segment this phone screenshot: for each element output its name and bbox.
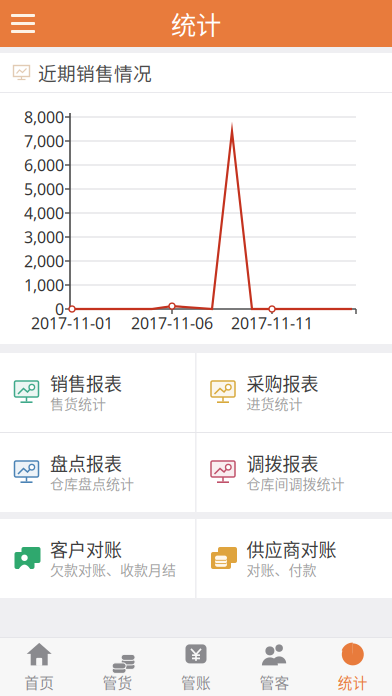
- staticText: 5,000: [24, 178, 64, 200]
- staticText: 仓库盘点统计: [50, 474, 134, 493]
- staticText: 管账: [181, 671, 211, 693]
- staticText: 8,000: [24, 106, 64, 128]
- staticText: 2017-11-01: [31, 312, 113, 334]
- button[interactable]: 管账: [157, 638, 235, 696]
- button[interactable]: Menu: [0, 0, 46, 47]
- staticText: 2017-11-06: [131, 312, 213, 334]
- staticText: 7,000: [24, 130, 64, 152]
- staticText: 统计: [338, 671, 368, 693]
- staticText: 2017-11-11: [231, 312, 313, 334]
- staticText: 进货统计: [246, 394, 302, 413]
- staticText: 仓库间调拨统计: [246, 474, 344, 493]
- staticText: 采购报表: [246, 372, 318, 394]
- staticText: 对账、付款: [246, 560, 316, 579]
- staticText: 管货: [103, 671, 133, 693]
- staticText: 首页: [24, 671, 54, 693]
- staticText: 2,000: [24, 250, 64, 272]
- button[interactable]: 首页: [0, 638, 78, 696]
- staticText: 盘点报表: [50, 452, 122, 474]
- button[interactable]: 客户对账: [0, 519, 195, 598]
- staticText: 管客: [259, 671, 289, 693]
- button[interactable]: 调拨报表: [196, 433, 392, 512]
- button[interactable]: 管客: [235, 638, 314, 696]
- staticText: 供应商对账: [246, 538, 336, 560]
- button[interactable]: 盘点报表: [0, 433, 195, 512]
- staticText: 欠款对账、收款月结: [50, 560, 176, 579]
- staticText: 售货统计: [50, 394, 106, 413]
- button[interactable]: 统计: [314, 638, 392, 696]
- staticText: 0: [55, 298, 64, 320]
- button[interactable]: 销售报表: [0, 353, 195, 432]
- staticText: 4,000: [24, 202, 64, 224]
- staticText: 1,000: [24, 274, 64, 296]
- staticText: 销售报表: [50, 372, 122, 394]
- staticText: 调拨报表: [246, 452, 318, 474]
- staticText: 统计: [171, 5, 221, 42]
- staticText: 6,000: [24, 154, 64, 176]
- button[interactable]: 采购报表: [196, 353, 392, 432]
- staticText: 近期销售情况: [38, 59, 152, 86]
- button[interactable]: 供应商对账: [196, 519, 392, 598]
- staticText: 3,000: [24, 226, 64, 248]
- staticText: 客户对账: [50, 538, 122, 560]
- button[interactable]: 管货: [78, 638, 157, 696]
